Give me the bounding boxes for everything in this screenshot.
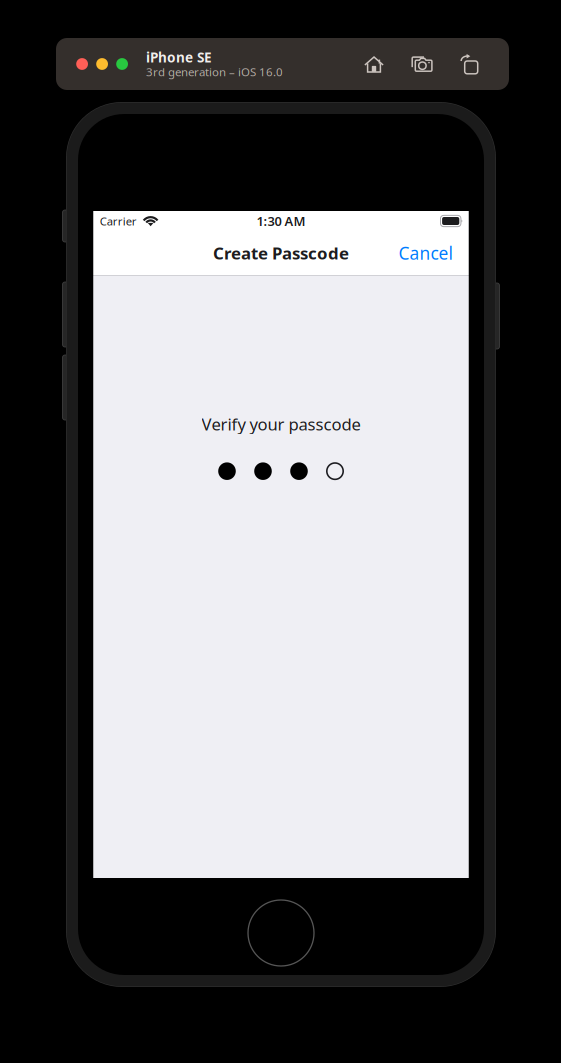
staticText: Cancel: [398, 241, 452, 265]
staticText: iPhone SE: [146, 48, 212, 66]
staticText: Create Passcode: [213, 242, 349, 264]
button[interactable]: Home: [364, 55, 384, 73]
button[interactable]: Cancel: [394, 235, 456, 271]
button[interactable]: Screenshot: [411, 55, 433, 73]
staticText: 3rd generation – iOS 16.0: [146, 64, 283, 80]
staticText: Verify your passcode: [201, 413, 360, 435]
button[interactable]: Rotate: [460, 54, 478, 74]
staticText: Carrier: [100, 213, 137, 229]
staticText: 1:30 AM: [256, 212, 305, 230]
